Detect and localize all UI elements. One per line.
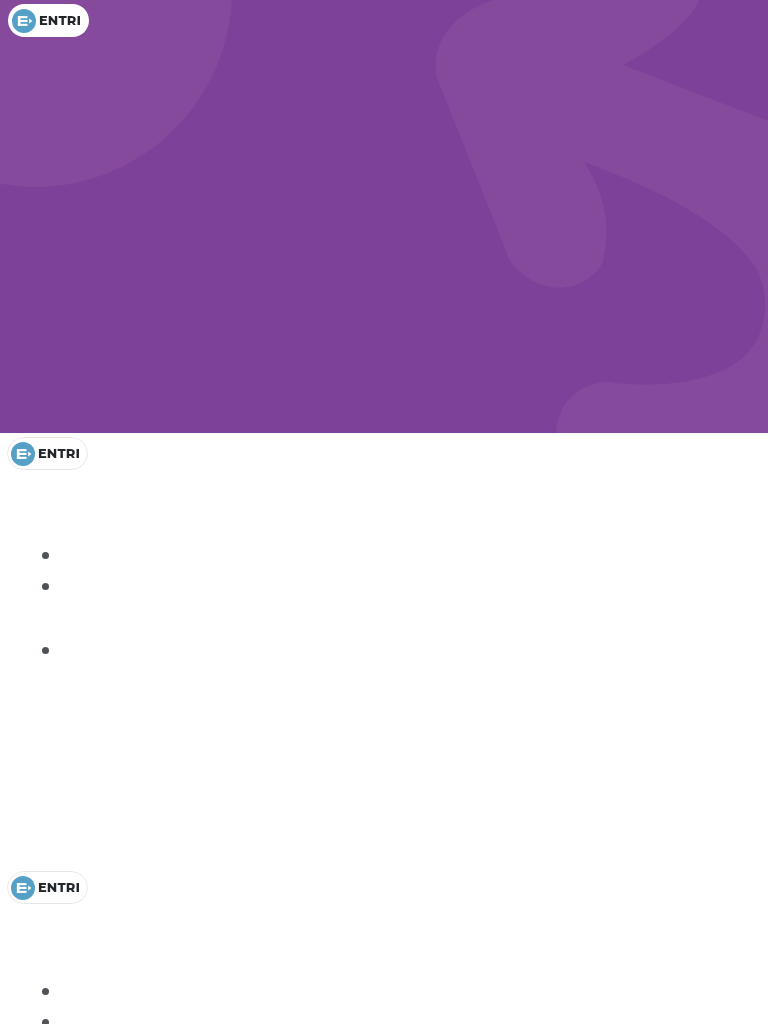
button[interactable]: Entri home xyxy=(7,871,88,904)
staticText: ENTRI xyxy=(38,445,80,461)
staticText: ENTRI xyxy=(39,12,81,28)
button[interactable]: Entri home xyxy=(8,4,89,37)
staticText: ENTRI xyxy=(38,879,80,895)
button[interactable]: Entri home xyxy=(7,437,88,470)
